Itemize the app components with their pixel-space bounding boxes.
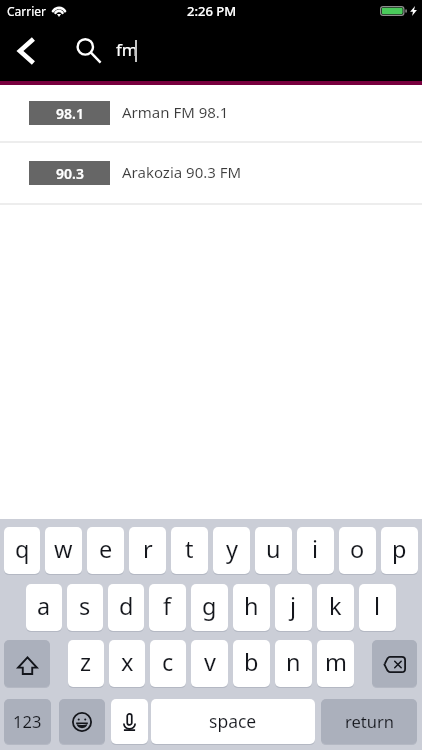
staticText: 2:26 PM xyxy=(187,2,237,20)
staticText: return xyxy=(345,710,394,732)
staticText: p xyxy=(392,533,407,565)
staticText: g xyxy=(202,590,217,622)
staticText: r xyxy=(143,533,153,565)
button[interactable]: p xyxy=(381,527,418,574)
staticText: v xyxy=(204,646,216,678)
button[interactable]: a xyxy=(26,584,62,631)
staticText: f xyxy=(163,590,172,622)
staticText: i xyxy=(312,533,319,565)
button[interactable]: y xyxy=(213,527,250,574)
staticText: c xyxy=(162,646,174,678)
staticText: o xyxy=(350,533,365,565)
button[interactable]: e xyxy=(87,527,124,574)
button[interactable]: w xyxy=(45,527,82,574)
staticText: n xyxy=(286,646,301,678)
staticText: j xyxy=(290,590,297,622)
staticText: 98.1 xyxy=(56,104,84,123)
staticText: b xyxy=(244,646,259,678)
button[interactable]: Back xyxy=(0,21,54,81)
staticText: u xyxy=(266,533,281,565)
button[interactable]: 98.1 xyxy=(0,85,422,143)
staticText: space xyxy=(209,709,257,733)
button[interactable]: r xyxy=(129,527,166,574)
button[interactable]: n xyxy=(275,640,312,687)
staticText: q xyxy=(15,533,30,565)
button[interactable]: x xyxy=(109,640,145,687)
button[interactable]: Emoji xyxy=(59,699,105,744)
staticText: z xyxy=(80,646,92,678)
button[interactable]: l xyxy=(359,584,396,631)
button[interactable]: Shift xyxy=(4,640,50,687)
button[interactable]: return xyxy=(321,699,417,744)
staticText: 90.3 xyxy=(56,164,84,183)
staticText: Arakozia 90.3 FM xyxy=(122,162,242,182)
button[interactable]: t xyxy=(171,527,208,574)
button[interactable]: h xyxy=(233,584,270,631)
button[interactable]: b xyxy=(233,640,270,687)
button[interactable]: v xyxy=(191,640,228,687)
staticText: k xyxy=(329,590,342,622)
button[interactable]: k xyxy=(317,584,354,631)
staticText: 123 xyxy=(13,710,42,732)
button[interactable]: c xyxy=(150,640,186,687)
staticText: l xyxy=(374,590,381,622)
button[interactable]: i xyxy=(297,527,334,574)
button[interactable]: f xyxy=(149,584,186,631)
staticText: h xyxy=(244,590,259,622)
button[interactable]: s xyxy=(67,584,103,631)
button[interactable]: space xyxy=(151,699,315,744)
button[interactable]: o xyxy=(339,527,376,574)
staticText: s xyxy=(79,590,91,622)
button[interactable]: j xyxy=(275,584,312,631)
staticText: a xyxy=(37,590,51,622)
staticText: t xyxy=(185,533,194,565)
staticText: Carrier xyxy=(7,3,47,19)
button[interactable]: Dictation xyxy=(111,699,148,744)
staticText: e xyxy=(99,533,113,565)
staticText: m xyxy=(325,646,347,678)
button[interactable]: 123 xyxy=(4,699,51,744)
button[interactable]: m xyxy=(317,640,354,687)
staticText: w xyxy=(54,533,73,565)
staticText: d xyxy=(119,590,134,622)
other: Search xyxy=(74,35,102,63)
button[interactable]: d xyxy=(108,584,144,631)
button[interactable]: 90.3 xyxy=(0,143,422,205)
staticText: Arman FM 98.1 xyxy=(122,102,229,122)
button[interactable]: Delete xyxy=(372,640,417,687)
button[interactable]: q xyxy=(4,527,40,574)
staticText: fm xyxy=(116,38,138,61)
staticText: y xyxy=(226,533,238,565)
button[interactable]: u xyxy=(255,527,292,574)
staticText: x xyxy=(121,646,134,678)
button[interactable]: z xyxy=(68,640,104,687)
button[interactable]: g xyxy=(191,584,228,631)
